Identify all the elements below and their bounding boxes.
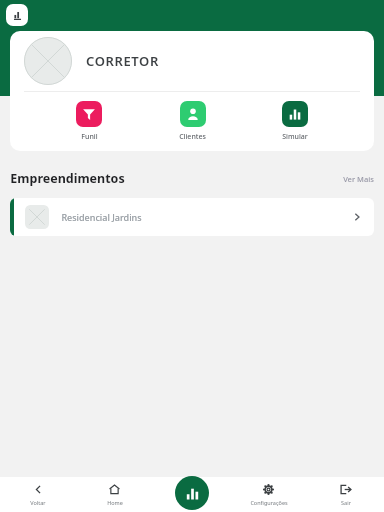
button[interactable]: App icon	[6, 4, 28, 26]
staticText: Funil	[81, 132, 98, 142]
button[interactable]: Simular	[272, 99, 318, 144]
button[interactable]: Simular	[175, 476, 209, 510]
button[interactable]: Sair	[307, 477, 384, 512]
staticText: Ver Mais	[343, 174, 374, 184]
staticText: Home	[107, 499, 123, 506]
staticText: Configurações	[250, 499, 288, 506]
button[interactable]: Configurações	[230, 477, 307, 512]
button[interactable]: Ver Mais	[343, 174, 374, 184]
staticText: Residencial Jardins	[61, 211, 142, 223]
staticText: Sair	[341, 499, 351, 506]
button[interactable]: Funil	[66, 99, 112, 144]
staticText: CORRETOR	[86, 52, 159, 70]
button[interactable]: Residencial Jardins	[10, 198, 374, 236]
staticText: Clientes	[179, 132, 206, 142]
button[interactable]: Clientes	[169, 99, 216, 144]
staticText: Voltar	[30, 499, 46, 506]
button[interactable]: Home	[76, 477, 153, 512]
staticText: Empreendimentos	[10, 170, 125, 187]
button[interactable]: Voltar	[0, 477, 76, 512]
button[interactable]: CORRETOR	[10, 31, 374, 91]
staticText: Simular	[282, 132, 308, 142]
